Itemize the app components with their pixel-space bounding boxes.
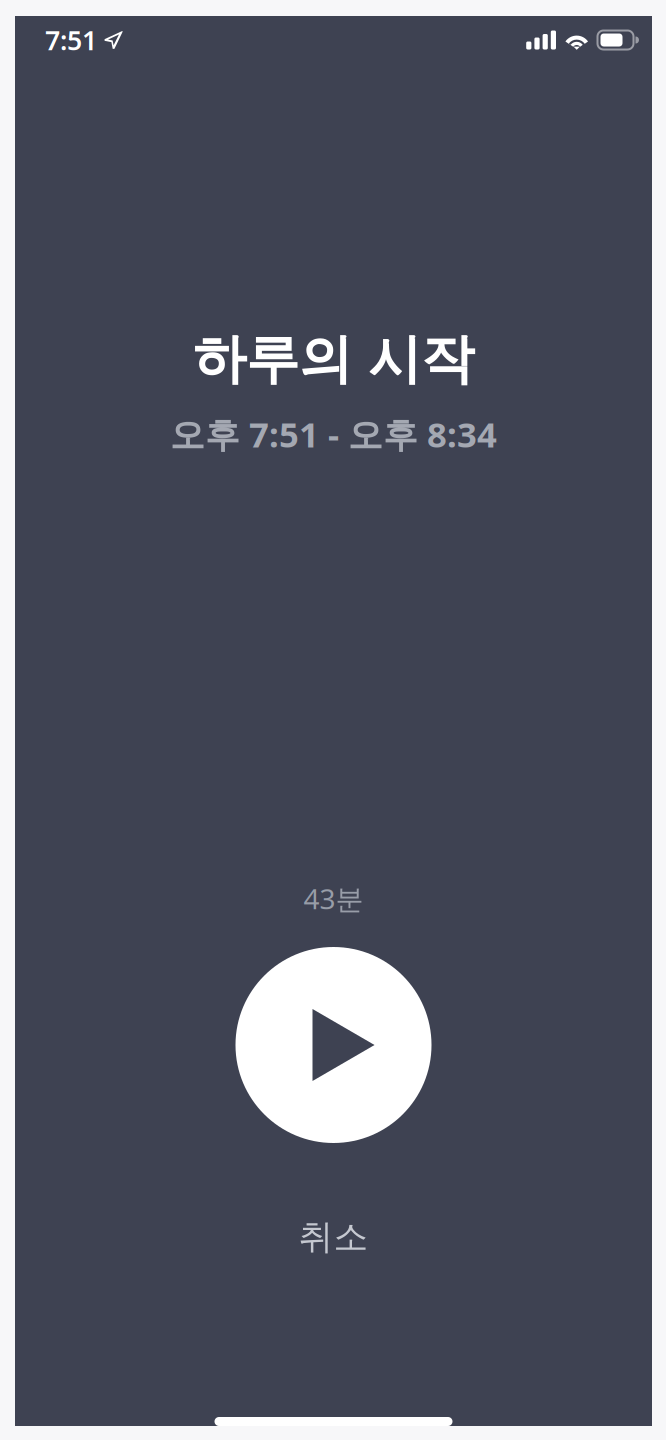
staticText: 취소 <box>298 1216 368 1258</box>
staticText: 하루의 시작 <box>193 327 474 392</box>
button[interactable]: 취소 <box>254 1213 412 1261</box>
button[interactable]: Start session <box>235 947 431 1143</box>
staticText: 43분 <box>303 880 363 917</box>
staticText: 7:51 <box>45 22 97 58</box>
staticText: 오후 7:51 - 오후 8:34 <box>170 411 497 457</box>
